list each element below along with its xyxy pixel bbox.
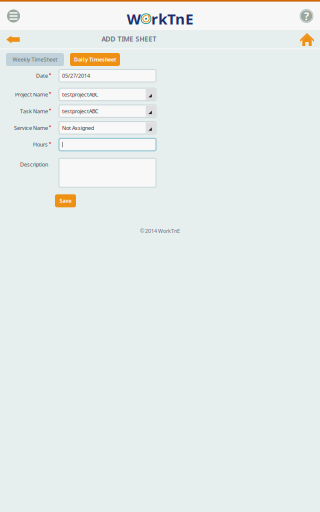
staticText: rkTnE bbox=[151, 9, 193, 28]
staticText: testprojectABC bbox=[62, 91, 98, 98]
staticText: Date bbox=[36, 72, 48, 79]
button[interactable]: Daily Timesheet bbox=[70, 53, 120, 66]
staticText: Not Assigned bbox=[62, 124, 94, 131]
button[interactable]: Save bbox=[55, 194, 76, 207]
button[interactable]: Home bbox=[294, 29, 320, 48]
staticText: Hours bbox=[33, 141, 48, 148]
staticText: Weekly TimeSheet bbox=[12, 56, 57, 63]
staticText: ADD TIME SHEET bbox=[101, 35, 156, 43]
staticText: 05/27/2014 bbox=[62, 72, 90, 79]
button[interactable]: Help bbox=[293, 4, 319, 28]
staticText: W bbox=[127, 9, 141, 28]
staticText: testprojectABC bbox=[62, 108, 98, 115]
staticText: ? bbox=[304, 9, 309, 23]
staticText: Project Name bbox=[15, 91, 48, 98]
button[interactable]: Weekly TimeSheet bbox=[6, 53, 64, 66]
button[interactable]: Menu bbox=[0, 4, 26, 28]
staticText: Service Name bbox=[14, 124, 48, 131]
staticText: Save bbox=[59, 197, 71, 204]
button[interactable]: Back bbox=[0, 29, 26, 48]
staticText: Daily Timesheet bbox=[74, 56, 116, 63]
staticText: © 2014 WorkTnE bbox=[140, 227, 180, 234]
staticText: Task Name bbox=[20, 108, 48, 115]
staticText: Description bbox=[20, 161, 48, 168]
